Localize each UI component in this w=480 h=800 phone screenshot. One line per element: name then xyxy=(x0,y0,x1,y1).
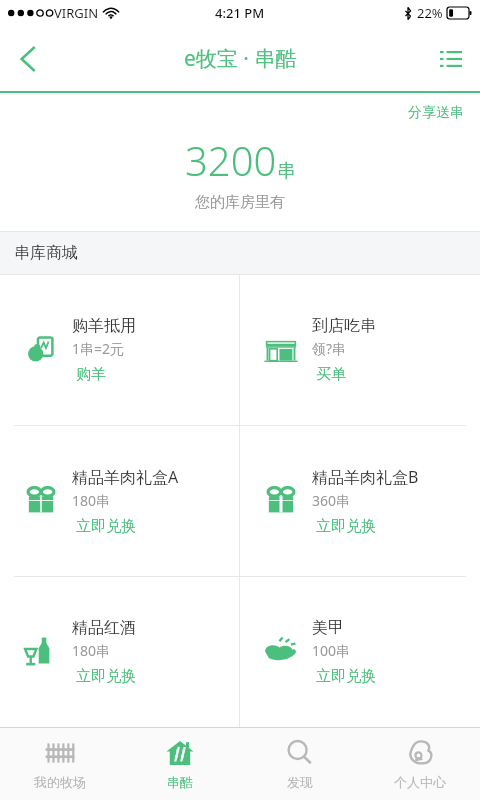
staticText: 3200 xyxy=(185,133,277,187)
staticText: 180串 xyxy=(72,641,111,660)
button[interactable]: 到店吃串 xyxy=(240,275,480,425)
staticText: 串库商城 xyxy=(14,243,78,263)
staticText: 发现 xyxy=(287,774,313,790)
staticText: 买单 xyxy=(316,365,346,384)
staticText: 个人中心 xyxy=(394,774,446,790)
staticText: 精品羊肉礼盒A xyxy=(72,466,179,488)
button[interactable]: 串酷 xyxy=(120,728,240,800)
staticText: 购羊 xyxy=(76,365,106,384)
button[interactable]: 我的牧场 xyxy=(0,728,120,800)
staticText: 180串 xyxy=(72,491,111,510)
button[interactable]: Back xyxy=(0,31,56,87)
staticText: e牧宝 · 串酷 xyxy=(184,44,297,73)
staticText: 分享送串 xyxy=(408,104,464,122)
button[interactable]: 发现 xyxy=(240,728,360,800)
button[interactable]: 精品羊肉礼盒B xyxy=(240,426,480,576)
button[interactable]: 美甲 xyxy=(240,577,480,727)
staticText: 立即兑换 xyxy=(316,667,376,686)
staticText: 4:21 PM xyxy=(215,4,265,22)
staticText: 22% xyxy=(417,4,443,22)
button[interactable]: 购羊抵用 xyxy=(0,275,239,425)
button[interactable]: 精品羊肉礼盒A xyxy=(0,426,239,576)
staticText: 1串=2元 xyxy=(72,339,125,358)
staticText: 串酷 xyxy=(167,774,193,790)
button[interactable]: Menu xyxy=(422,30,480,88)
staticText: 100串 xyxy=(312,641,351,660)
button[interactable]: 分享送串 xyxy=(402,100,470,126)
staticText: 到店吃串 xyxy=(312,316,376,336)
button[interactable]: 精品红酒 xyxy=(0,577,239,727)
staticText: 立即兑换 xyxy=(316,517,376,536)
staticText: 精品羊肉礼盒B xyxy=(312,466,419,488)
staticText: 领?串 xyxy=(312,339,347,358)
staticText: 立即兑换 xyxy=(76,667,136,686)
staticText: 串 xyxy=(277,159,296,183)
button[interactable]: 个人中心 xyxy=(360,728,480,800)
staticText: 精品红酒 xyxy=(72,618,136,638)
staticText: 美甲 xyxy=(312,618,344,638)
staticText: 立即兑换 xyxy=(76,517,136,536)
staticText: 360串 xyxy=(312,491,351,510)
staticText: 购羊抵用 xyxy=(72,316,136,336)
staticText: 您的库房里有 xyxy=(195,193,285,212)
staticText: VIRGIN xyxy=(54,4,99,22)
staticText: 我的牧场 xyxy=(34,774,86,790)
